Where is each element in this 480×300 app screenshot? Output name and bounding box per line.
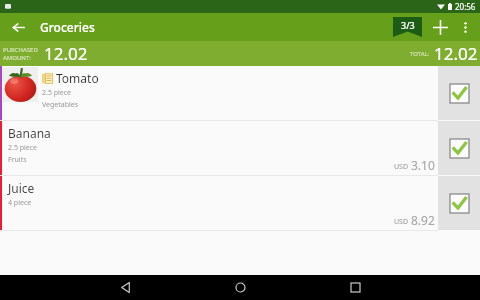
staticText: Groceries bbox=[40, 19, 95, 35]
staticText: 2.5 piece bbox=[42, 88, 72, 98]
button[interactable]: Recent apps bbox=[337, 275, 373, 300]
button[interactable]: Purchased bbox=[438, 121, 480, 175]
button[interactable]: Banana bbox=[0, 121, 438, 175]
button[interactable]: More options bbox=[453, 15, 477, 39]
button[interactable]: Purchased count 3 of 3 bbox=[393, 17, 422, 37]
staticText: USD bbox=[394, 162, 409, 172]
staticText: 3.10 bbox=[411, 157, 435, 173]
staticText: AMOUNT: bbox=[3, 54, 31, 62]
staticText: USD bbox=[394, 217, 409, 227]
staticText: Tomato bbox=[56, 70, 99, 86]
button[interactable]: Purchased bbox=[438, 176, 480, 230]
button[interactable]: Tomato bbox=[0, 66, 438, 120]
button[interactable]: Add item bbox=[427, 14, 453, 40]
staticText: 8.92 bbox=[411, 212, 435, 228]
staticText: 4 piece bbox=[8, 198, 32, 208]
button[interactable]: Back bbox=[5, 14, 31, 40]
staticText: Juice bbox=[8, 180, 35, 196]
staticText: Fruits bbox=[8, 155, 27, 165]
staticText: Vegetables bbox=[42, 100, 79, 110]
staticText: TOTAL: bbox=[410, 50, 430, 58]
staticText: Banana bbox=[8, 125, 51, 141]
staticText: PURCHASED bbox=[3, 46, 38, 54]
staticText: 3/3 bbox=[401, 19, 415, 31]
staticText: 12.02 bbox=[44, 42, 88, 65]
staticText: 12.02 bbox=[434, 42, 478, 65]
button[interactable]: Home bbox=[222, 275, 258, 300]
staticText: 2.5 piece bbox=[8, 143, 38, 153]
button[interactable]: Juice bbox=[0, 176, 438, 230]
button[interactable]: Back bbox=[107, 275, 143, 300]
staticText: 20:56 bbox=[455, 1, 476, 12]
button[interactable]: Purchased bbox=[438, 66, 480, 120]
